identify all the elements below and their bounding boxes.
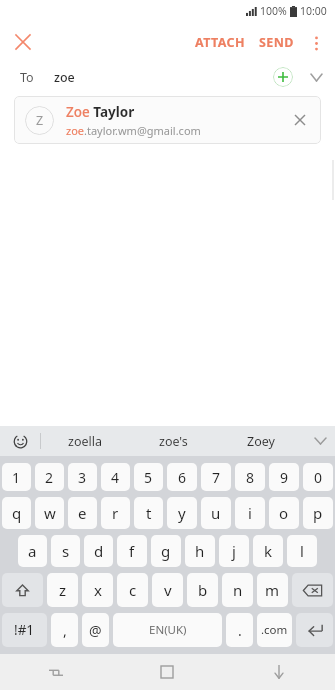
staticText: 6 bbox=[178, 468, 187, 487]
staticText: 5 bbox=[144, 468, 153, 487]
staticText: zoe's bbox=[159, 433, 188, 450]
button[interactable]: Enter bbox=[296, 613, 333, 647]
button[interactable]: i bbox=[235, 497, 265, 529]
button[interactable]: d bbox=[84, 535, 113, 567]
button[interactable]: y bbox=[167, 497, 197, 529]
staticText: t bbox=[146, 503, 152, 523]
staticText: 1 bbox=[12, 468, 21, 487]
button[interactable]: More suggestions bbox=[305, 426, 335, 456]
staticText: q bbox=[12, 503, 22, 523]
staticText: EN(UK) bbox=[149, 622, 187, 638]
button[interactable]: x bbox=[82, 573, 113, 607]
staticText: . bbox=[238, 621, 242, 640]
button[interactable]: 9 bbox=[269, 463, 299, 491]
button[interactable]: 3 bbox=[68, 463, 97, 491]
button[interactable]: 2 bbox=[35, 463, 64, 491]
button[interactable]: SEND bbox=[252, 26, 301, 59]
button[interactable]: 6 bbox=[167, 463, 197, 491]
staticText: w bbox=[44, 503, 56, 523]
button[interactable]: Recents bbox=[0, 654, 111, 690]
button[interactable]: @ bbox=[82, 613, 109, 647]
staticText: g bbox=[161, 541, 171, 561]
button[interactable]: m bbox=[257, 573, 288, 607]
staticText: e bbox=[78, 503, 87, 523]
staticText: 4 bbox=[111, 468, 120, 487]
staticText: j bbox=[232, 541, 236, 561]
staticText: To bbox=[20, 69, 34, 86]
button[interactable]: o bbox=[269, 497, 299, 529]
button[interactable]: 4 bbox=[101, 463, 130, 491]
button[interactable]: a bbox=[18, 535, 47, 567]
button[interactable]: 5 bbox=[134, 463, 163, 491]
staticText: 2 bbox=[45, 468, 54, 487]
staticText: r bbox=[112, 503, 119, 523]
button[interactable]: Zoey bbox=[217, 426, 305, 456]
staticText: zoe bbox=[54, 69, 75, 86]
button[interactable]: , bbox=[51, 613, 78, 647]
button[interactable]: z bbox=[47, 573, 78, 607]
staticText: zoe.taylor.wm@gmail.com bbox=[66, 123, 201, 138]
button[interactable]: n bbox=[222, 573, 253, 607]
button[interactable]: c bbox=[117, 573, 148, 607]
button[interactable]: k bbox=[253, 535, 283, 567]
button[interactable]: u bbox=[201, 497, 231, 529]
staticText: 10:00 bbox=[300, 4, 327, 18]
staticText: s bbox=[62, 541, 70, 561]
button[interactable]: Expand bbox=[305, 66, 327, 88]
button[interactable]: q bbox=[2, 497, 31, 529]
button[interactable]: Close bbox=[6, 25, 40, 59]
button[interactable]: v bbox=[152, 573, 183, 607]
button[interactable]: zoe's bbox=[129, 426, 217, 456]
button[interactable]: p bbox=[303, 497, 333, 529]
button[interactable]: 1 bbox=[2, 463, 31, 491]
button[interactable]: ATTACH bbox=[188, 26, 252, 59]
button[interactable]: t bbox=[134, 497, 163, 529]
staticText: SEND bbox=[259, 34, 294, 51]
button[interactable]: EN(UK) bbox=[113, 613, 222, 647]
staticText: @ bbox=[89, 621, 102, 640]
button[interactable]: . bbox=[226, 613, 253, 647]
staticText: m bbox=[265, 580, 280, 600]
staticText: l bbox=[300, 541, 304, 561]
staticText: o bbox=[279, 503, 289, 523]
button[interactable]: h bbox=[185, 535, 215, 567]
button[interactable]: w bbox=[35, 497, 64, 529]
staticText: i bbox=[248, 503, 252, 523]
button[interactable]: 0 bbox=[303, 463, 333, 491]
staticText: p bbox=[313, 503, 323, 523]
staticText: 100% bbox=[260, 4, 287, 18]
staticText: Zoey bbox=[247, 433, 275, 450]
button[interactable]: Hide keyboard bbox=[223, 654, 335, 690]
button[interactable]: Z bbox=[14, 96, 321, 144]
button[interactable]: Add recipient bbox=[273, 67, 293, 87]
button[interactable]: f bbox=[117, 535, 147, 567]
button[interactable]: b bbox=[187, 573, 218, 607]
button[interactable]: 8 bbox=[235, 463, 265, 491]
button[interactable]: Emoji bbox=[0, 426, 40, 456]
staticText: f bbox=[129, 541, 135, 561]
button[interactable]: s bbox=[51, 535, 80, 567]
button[interactable]: Remove recipient bbox=[283, 103, 317, 137]
staticText: c bbox=[129, 580, 137, 600]
button[interactable]: Home bbox=[111, 654, 223, 690]
button[interactable]: zoella bbox=[41, 426, 129, 456]
button[interactable]: Shift bbox=[2, 573, 43, 607]
button[interactable]: .com bbox=[257, 613, 292, 647]
staticText: 8 bbox=[246, 468, 255, 487]
staticText: a bbox=[28, 541, 37, 561]
staticText: d bbox=[94, 541, 104, 561]
button[interactable]: 7 bbox=[201, 463, 231, 491]
button[interactable]: g bbox=[151, 535, 181, 567]
staticText: u bbox=[211, 503, 221, 523]
staticText: h bbox=[195, 541, 205, 561]
staticText: zoella bbox=[68, 433, 102, 450]
button[interactable]: !#1 bbox=[2, 613, 47, 647]
button[interactable]: e bbox=[68, 497, 97, 529]
staticText: 7 bbox=[212, 468, 221, 487]
button[interactable]: More options bbox=[301, 28, 331, 58]
staticText: x bbox=[94, 580, 102, 600]
button[interactable]: j bbox=[219, 535, 249, 567]
button[interactable]: r bbox=[101, 497, 130, 529]
button[interactable]: l bbox=[287, 535, 317, 567]
button[interactable]: Backspace bbox=[292, 573, 333, 607]
